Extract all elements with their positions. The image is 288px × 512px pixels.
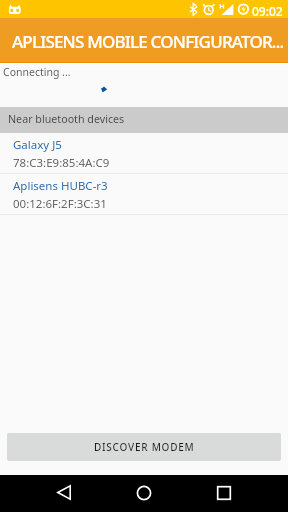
- button[interactable]: Back: [36, 475, 92, 512]
- button[interactable]: Recent apps: [196, 475, 252, 512]
- staticText: DISCOVER MODEM: [94, 440, 195, 454]
- button[interactable]: Home: [116, 475, 172, 512]
- staticText: APLISENS MOBILE CONFIGURATOR...: [12, 30, 284, 53]
- staticText: Aplisens HUBC-r3: [13, 178, 108, 194]
- staticText: 78:C3:E9:85:4A:C9: [13, 155, 110, 171]
- button[interactable]: Galaxy J5: [0, 133, 288, 174]
- staticText: Near bluetooth devices: [8, 112, 125, 127]
- staticText: Connecting ...: [3, 65, 71, 79]
- button[interactable]: DISCOVER MODEM: [7, 433, 281, 461]
- staticText: Galaxy J5: [13, 137, 62, 153]
- button[interactable]: Aplisens HUBC-r3: [0, 174, 288, 215]
- staticText: 09:02: [252, 3, 283, 19]
- staticText: 00:12:6F:2F:3C:31: [13, 196, 107, 212]
